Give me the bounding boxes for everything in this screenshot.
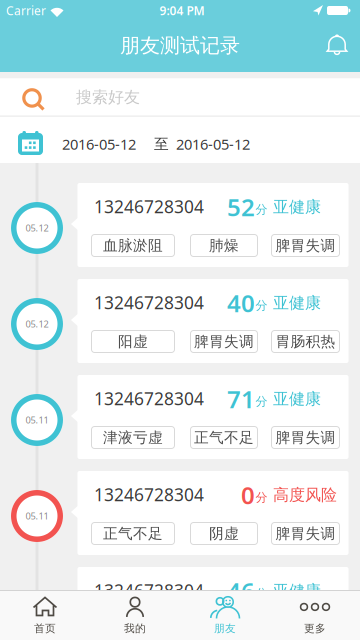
- button[interactable]: 朋友: [180, 590, 270, 640]
- staticText: 0: [241, 479, 255, 511]
- staticText: 正气不足: [194, 428, 254, 446]
- staticText: 高度风险: [273, 485, 337, 505]
- button[interactable]: Notifications: [322, 30, 352, 60]
- staticText: 阳虚: [118, 332, 148, 350]
- staticText: 40: [227, 287, 255, 319]
- staticText: 胃肠积热: [275, 620, 335, 638]
- staticText: 05.11: [25, 510, 48, 522]
- button[interactable]: 首页: [0, 590, 90, 640]
- staticText: 朋友测试记录: [120, 33, 240, 58]
- staticText: 津液亏虚: [103, 428, 163, 446]
- staticText: 2016-05-12: [62, 134, 136, 154]
- staticText: 2016-05-12: [176, 134, 250, 154]
- staticText: 亚健康: [273, 293, 321, 313]
- staticText: 46: [227, 575, 255, 607]
- staticText: 分: [255, 298, 267, 313]
- button[interactable]: Select date range: [0, 117, 360, 163]
- staticText: 05.11: [25, 414, 48, 426]
- staticText: 13246728304: [94, 195, 204, 218]
- staticText: 05.12: [25, 318, 48, 330]
- staticText: 52: [227, 191, 255, 223]
- button[interactable]: 13246728304: [77, 471, 348, 555]
- button[interactable]: 13246728304: [77, 375, 348, 459]
- staticText: 9:04 PM: [159, 2, 204, 18]
- button[interactable]: 13246728304: [77, 279, 348, 363]
- staticText: 更多: [304, 622, 326, 635]
- staticText: 分: [255, 586, 267, 601]
- staticText: 脾胃失调: [275, 524, 335, 542]
- staticText: 朋友: [214, 622, 236, 635]
- staticText: 脾胃失调: [275, 428, 335, 446]
- staticText: 胃肠积热: [275, 332, 335, 350]
- staticText: 搜索好友: [76, 87, 140, 107]
- staticText: 肺燥: [209, 236, 239, 254]
- staticText: 正气不足: [103, 524, 163, 542]
- button[interactable]: 13246728304: [77, 183, 348, 267]
- button[interactable]: 更多: [270, 590, 360, 640]
- staticText: 05.12: [25, 222, 48, 234]
- staticText: 血脉淤阻: [103, 236, 163, 254]
- staticText: 首页: [34, 622, 56, 635]
- staticText: 脾胃失调: [194, 332, 254, 350]
- staticText: 阳虚: [118, 620, 148, 638]
- button[interactable]: Search friends: [0, 78, 360, 116]
- staticText: 13246728304: [94, 291, 204, 314]
- staticText: 分: [255, 202, 267, 217]
- staticText: 亚健康: [273, 581, 321, 601]
- staticText: 分: [255, 490, 267, 505]
- staticText: 13246728304: [94, 387, 204, 410]
- staticText: 我的: [124, 622, 146, 635]
- staticText: 至: [154, 135, 169, 153]
- staticText: 阴虚: [209, 524, 239, 542]
- staticText: 亚健康: [273, 197, 321, 217]
- staticText: 13246728304: [94, 579, 204, 602]
- staticText: Carrier: [6, 2, 46, 18]
- staticText: 脾胃失调: [275, 236, 335, 254]
- staticText: 分: [255, 394, 267, 409]
- staticText: 13246728304: [94, 483, 204, 506]
- staticText: 脾胃失调: [194, 620, 254, 638]
- button[interactable]: 我的: [90, 590, 180, 640]
- staticText: 亚健康: [273, 389, 321, 409]
- staticText: 71: [227, 383, 255, 415]
- button[interactable]: 13246728304: [77, 567, 348, 640]
